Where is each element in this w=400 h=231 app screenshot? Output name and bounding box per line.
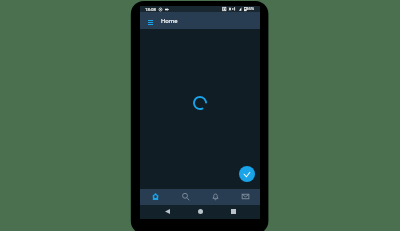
staticText: Home <box>161 17 178 25</box>
button[interactable]: Notifications <box>200 189 230 205</box>
button[interactable]: Recent apps <box>226 204 240 218</box>
staticText: 36% <box>246 6 255 12</box>
staticText: 18:08 <box>145 6 156 12</box>
button[interactable]: Back <box>160 204 174 218</box>
button[interactable]: Messages <box>230 189 260 205</box>
button[interactable]: Open navigation menu <box>144 15 156 27</box>
button[interactable]: Search <box>170 189 200 205</box>
button[interactable]: Confirm <box>239 166 255 182</box>
button[interactable]: Home <box>193 204 207 218</box>
button[interactable]: Home <box>140 189 170 205</box>
